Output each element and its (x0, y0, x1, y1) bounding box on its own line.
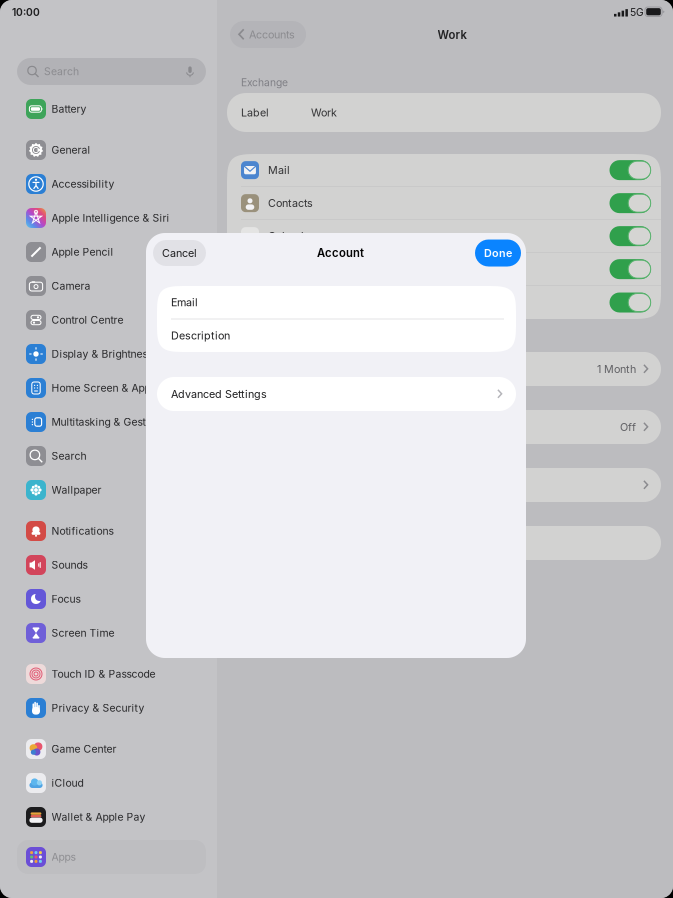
staticText: Home Screen & Apps (51, 382, 155, 394)
staticText: Description (171, 329, 230, 342)
staticText: Display & Brightness (51, 348, 152, 360)
staticText: Screen Time (51, 627, 114, 639)
staticText: Apple Pencil (51, 246, 113, 258)
staticText: Mail (268, 164, 290, 177)
staticText: Sounds (51, 559, 87, 571)
button[interactable]: Game Center (17, 732, 206, 766)
staticText: Notifications (51, 525, 113, 537)
button[interactable]: Notifications (17, 514, 206, 548)
staticText: Search (51, 450, 86, 462)
staticText: Off (620, 420, 636, 433)
button[interactable]: Wallet & Apple Pay (17, 800, 206, 834)
button[interactable]: Accounts (230, 21, 306, 48)
staticText: 5G (630, 6, 644, 18)
button[interactable]: Home Screen & Apps (17, 371, 206, 405)
staticText: Search (44, 65, 79, 78)
button[interactable]: Advanced Settings (146, 377, 526, 411)
button[interactable]: Battery (17, 92, 206, 126)
staticText: Control Centre (51, 314, 123, 326)
button[interactable]: Display & Brightness (17, 337, 206, 371)
staticText: Cancel (162, 246, 197, 259)
staticText: Calendars (268, 230, 320, 243)
staticText: Work (311, 106, 337, 119)
staticText: Accessibility (51, 178, 114, 190)
staticText: Apps (51, 851, 75, 863)
button[interactable]: Privacy & Security (17, 691, 206, 725)
staticText: Camera (51, 280, 90, 292)
staticText: Label (241, 106, 269, 119)
staticText: Wallet & Apple Pay (51, 811, 145, 823)
staticText: Email (171, 296, 198, 309)
staticText: Multitasking & Gestures (51, 416, 166, 428)
button[interactable]: iCloud (17, 766, 206, 800)
staticText: Touch ID & Passcode (51, 668, 155, 680)
staticText: General (51, 144, 90, 156)
button[interactable]: Accessibility (17, 167, 206, 201)
staticText: Contacts (268, 197, 313, 210)
button[interactable]: General (17, 133, 206, 167)
button[interactable]: Apple Pencil (17, 235, 206, 269)
button[interactable]: Setting (217, 468, 673, 502)
button[interactable]: Off (217, 410, 673, 444)
staticText: iCloud (51, 777, 83, 789)
staticText: Advanced Settings (171, 387, 267, 400)
staticText: Privacy & Security (51, 702, 144, 714)
staticText: Exchange (241, 76, 288, 89)
button[interactable]: Search (17, 58, 206, 85)
button[interactable]: Wallpaper (17, 473, 206, 507)
button[interactable]: Done (475, 239, 521, 266)
button[interactable]: Camera (17, 269, 206, 303)
button[interactable]: Cancel (153, 240, 206, 266)
button[interactable]: Screen Time (17, 616, 206, 650)
staticText: Battery (51, 103, 86, 115)
button[interactable]: Apple Intelligence & Siri (17, 201, 206, 235)
staticText: Focus (51, 593, 80, 605)
button[interactable]: Sounds (17, 548, 206, 582)
button[interactable]: Focus (17, 582, 206, 616)
button[interactable]: Multitasking & Gestures (17, 405, 206, 439)
staticText: Apple Intelligence & Siri (51, 212, 169, 224)
staticText: 1 Month (597, 362, 636, 375)
staticText: 10:00 (12, 6, 40, 18)
staticText: Wallpaper (51, 484, 101, 496)
button[interactable]: Touch ID & Passcode (17, 657, 206, 691)
staticText: Accounts (249, 28, 295, 41)
button[interactable]: Control Centre (17, 303, 206, 337)
button[interactable]: Apps (17, 840, 206, 874)
button[interactable]: Setting (217, 526, 673, 560)
staticText: Done (484, 246, 512, 259)
button[interactable]: 1 Month (217, 352, 673, 386)
staticText: Account (317, 246, 364, 260)
staticText: Work (437, 28, 466, 42)
button[interactable]: Search (17, 439, 206, 473)
staticText: Game Center (51, 743, 116, 755)
